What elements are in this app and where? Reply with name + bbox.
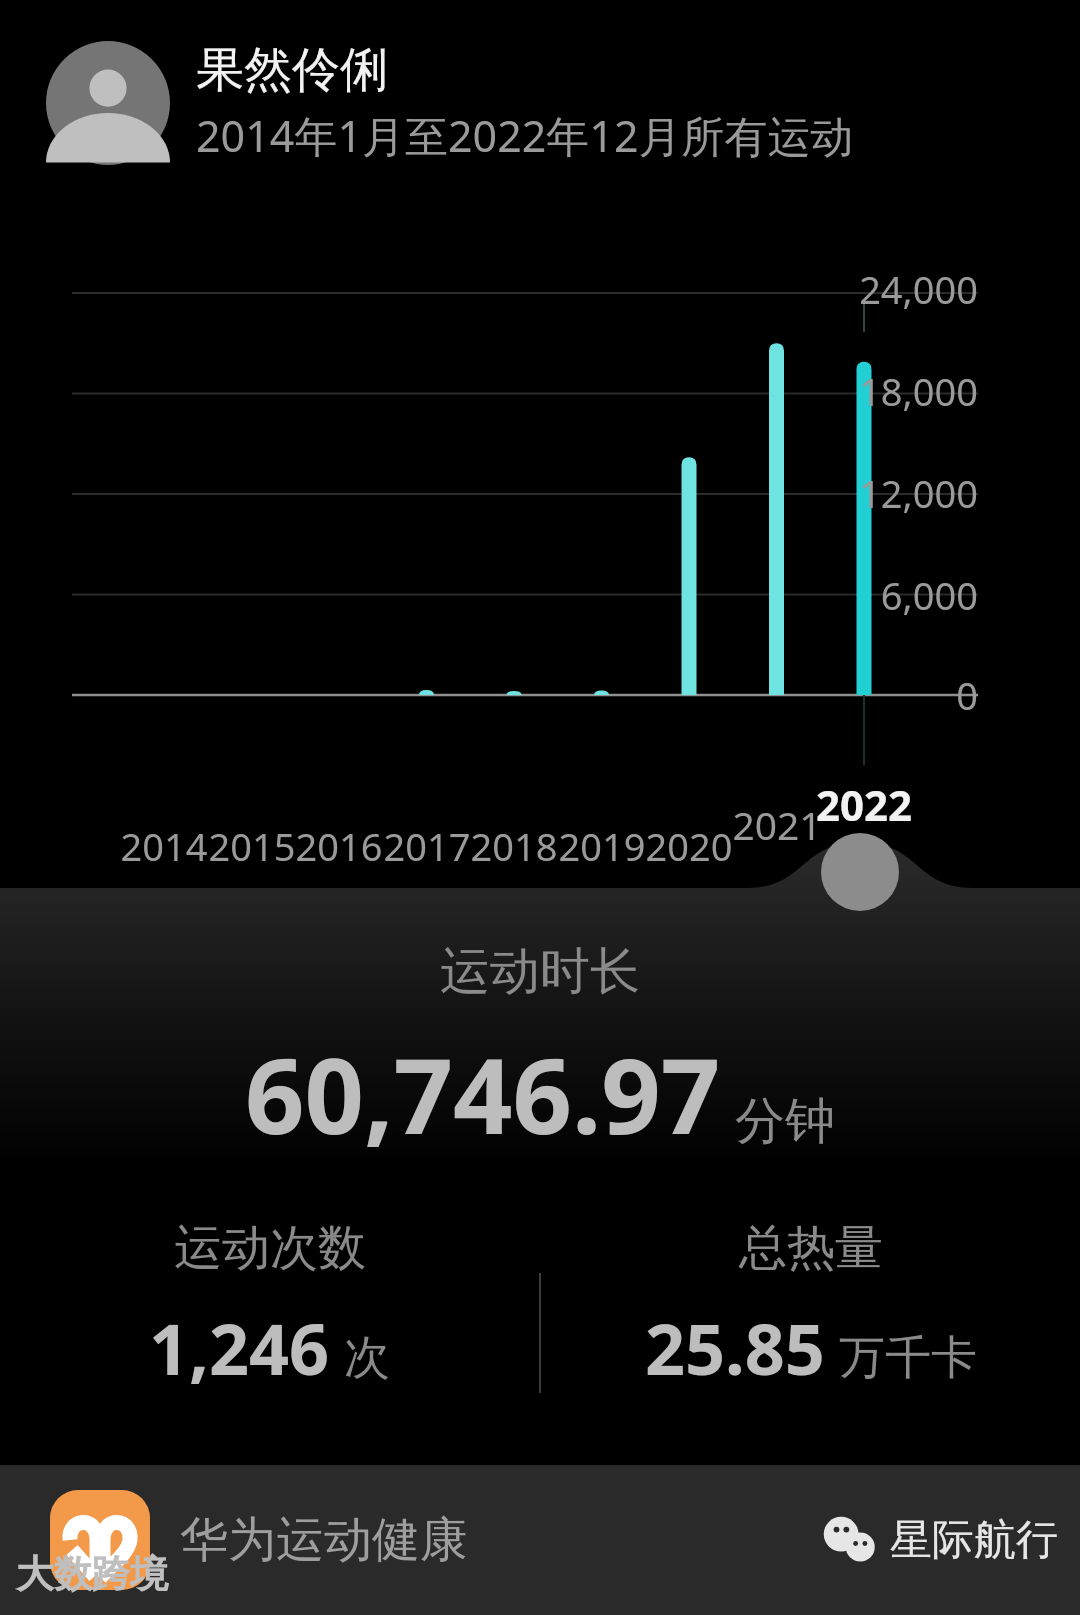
- staticText: 总热量: [739, 1218, 883, 1278]
- staticText: 2017: [365, 820, 489, 872]
- staticText: 星际航行: [890, 1514, 1058, 1567]
- staticText: 25.85: [645, 1300, 825, 1395]
- other: WeChat: [822, 1511, 880, 1569]
- staticText: 12,000: [780, 467, 978, 519]
- button[interactable]: Huawei Health: [0, 1465, 1080, 1615]
- staticText: 万千卡: [839, 1329, 977, 1387]
- staticText: 2022: [802, 776, 926, 833]
- staticText: 2020: [627, 820, 751, 872]
- staticText: 大数跨境: [16, 1550, 168, 1598]
- staticText: 分钟: [735, 1090, 835, 1153]
- staticText: 果然伶俐: [196, 40, 388, 100]
- staticText: 2018: [452, 820, 576, 872]
- staticText: 次: [344, 1329, 390, 1387]
- button[interactable]: 总热量: [541, 1218, 1080, 1395]
- staticText: 24,000: [780, 263, 978, 315]
- other: Profile avatar: [46, 41, 170, 165]
- staticText: 0: [780, 669, 978, 721]
- staticText: 2021: [715, 798, 839, 851]
- other: Huawei Health: [50, 1490, 150, 1590]
- button[interactable]: WeChat: [822, 1511, 1080, 1569]
- staticText: 2014: [102, 820, 226, 872]
- staticText: 6,000: [780, 569, 978, 621]
- button[interactable]: Profile avatar: [0, 0, 1080, 205]
- staticText: 1,246: [149, 1300, 330, 1395]
- staticText: 2019: [540, 820, 664, 872]
- staticText: 2015: [190, 820, 314, 872]
- staticText: 60,746.97: [245, 1023, 721, 1165]
- staticText: 2016: [277, 820, 401, 872]
- staticText: 2014年1月至2022年12月所有运动: [196, 106, 854, 165]
- staticText: 运动时长: [440, 940, 640, 1003]
- button[interactable]: 运动次数: [0, 1218, 539, 1395]
- staticText: 运动次数: [174, 1218, 366, 1278]
- staticText: 18,000: [780, 365, 978, 417]
- staticText: 华为运动健康: [180, 1510, 468, 1570]
